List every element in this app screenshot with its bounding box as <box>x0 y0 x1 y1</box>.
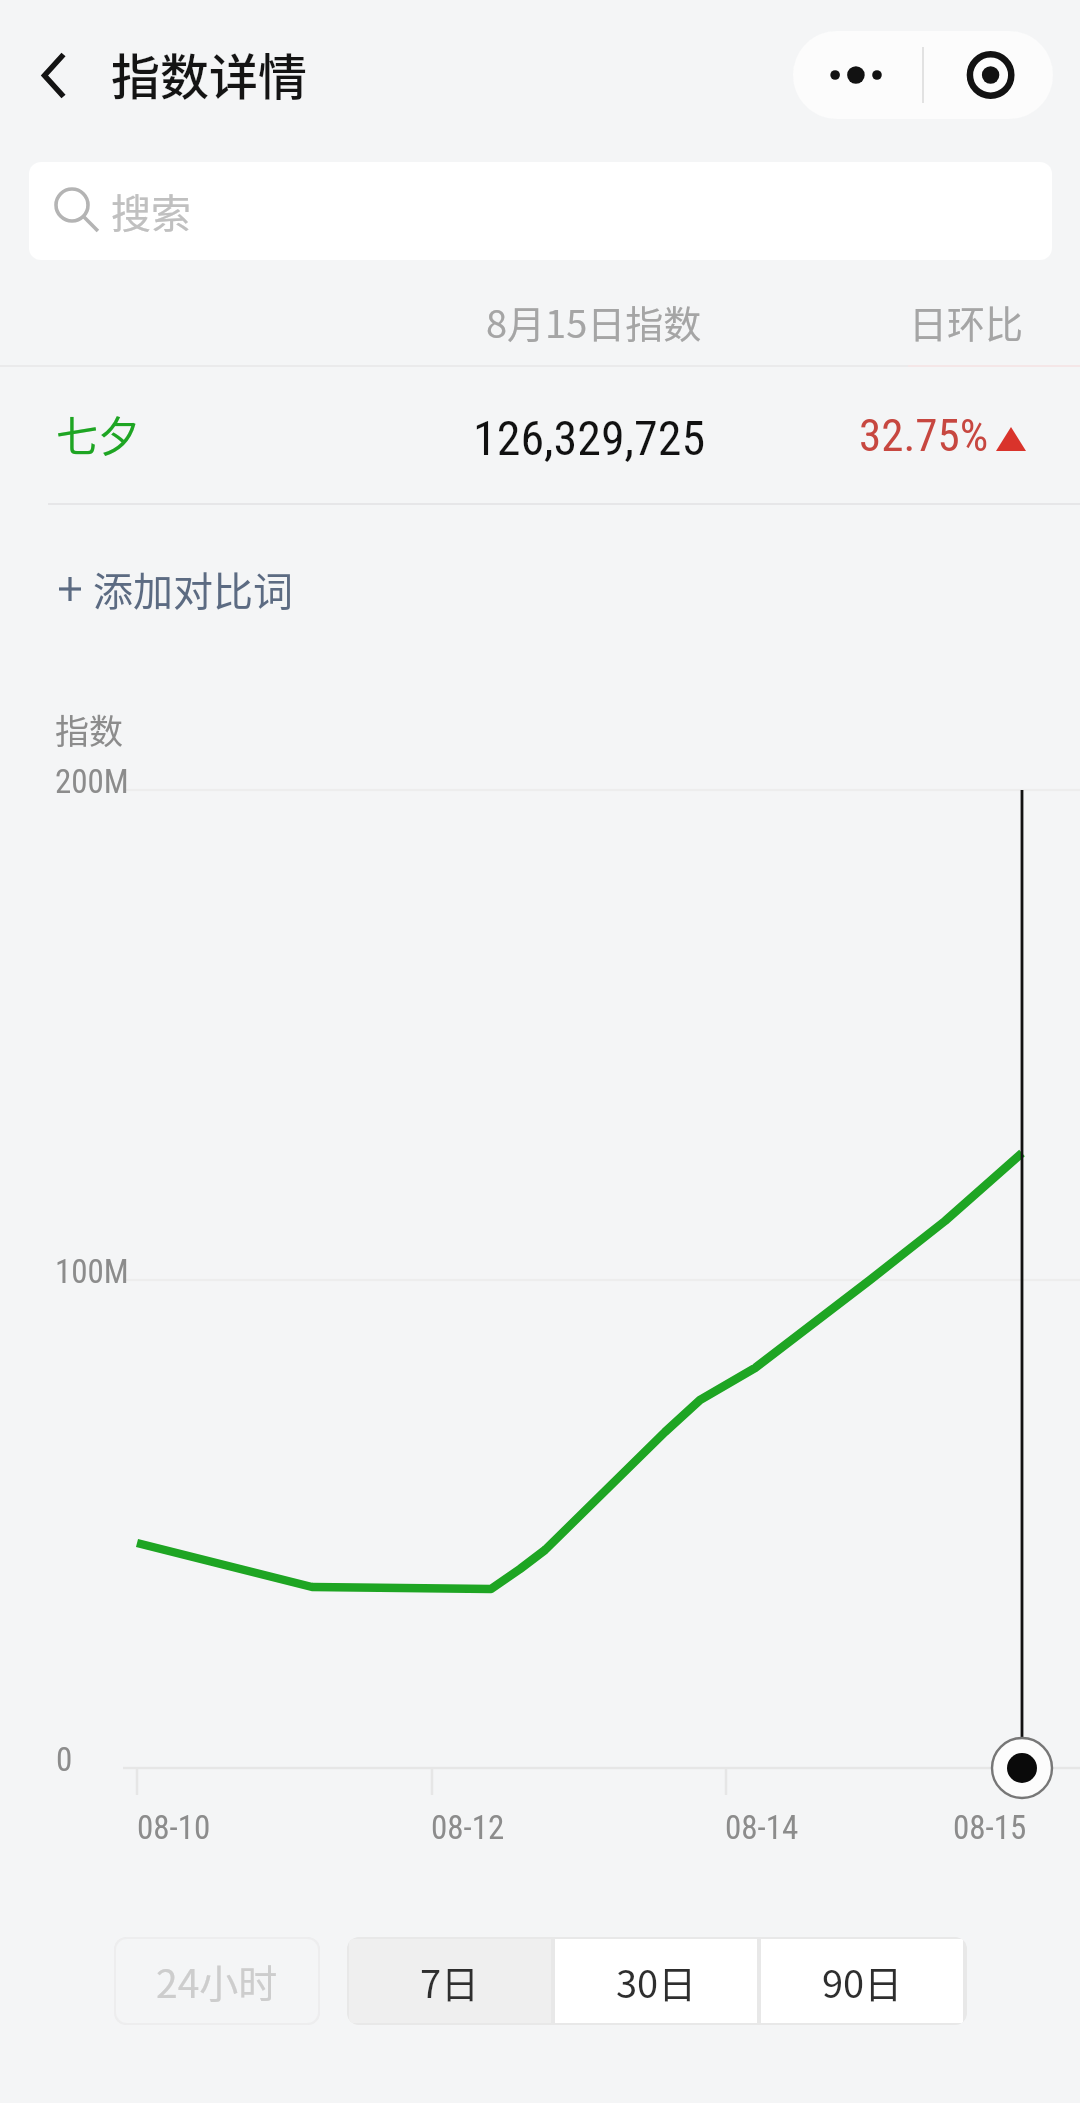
staticText: 08-12 <box>431 1808 505 1847</box>
button[interactable]: 添加对比词 <box>59 549 281 629</box>
staticText: 126,329,725 <box>473 410 706 466</box>
staticText: 七夕 <box>56 403 141 464</box>
button[interactable]: Back <box>17 38 91 112</box>
staticText: 指数详情 <box>111 38 308 109</box>
staticText: 日环比 <box>909 294 1024 349</box>
button[interactable]: 24小时 <box>116 1939 318 2023</box>
staticText: 指数 <box>55 705 123 754</box>
button[interactable]: 30日 <box>555 1939 757 2023</box>
button[interactable]: 8月15日指数 <box>440 280 750 366</box>
button[interactable]: 7日 <box>349 1939 551 2023</box>
staticText: 100M <box>55 1252 129 1291</box>
button[interactable]: 搜索 <box>29 162 1052 260</box>
button[interactable]: More options <box>793 31 923 119</box>
staticText: 30日 <box>616 1954 697 2009</box>
button[interactable]: 90日 <box>761 1939 963 2023</box>
staticText: 08-15 <box>953 1808 1027 1847</box>
staticText: 32.75% <box>859 409 989 462</box>
staticText: 0 <box>56 1740 73 1779</box>
button[interactable]: 日环比 <box>870 280 1080 366</box>
staticText: 7日 <box>420 1954 480 2009</box>
staticText: 8月15日指数 <box>486 294 702 349</box>
staticText: 08-10 <box>137 1808 211 1847</box>
staticText: 200M <box>55 762 129 801</box>
button[interactable]: Close <box>923 31 1053 119</box>
staticText: 搜索 <box>111 182 191 240</box>
staticText: 添加对比词 <box>93 560 293 618</box>
staticText: 08-14 <box>725 1808 799 1847</box>
button[interactable]: 七夕 <box>0 367 1080 503</box>
staticText: 90日 <box>822 1954 903 2009</box>
staticText: 24小时 <box>156 1953 278 2009</box>
